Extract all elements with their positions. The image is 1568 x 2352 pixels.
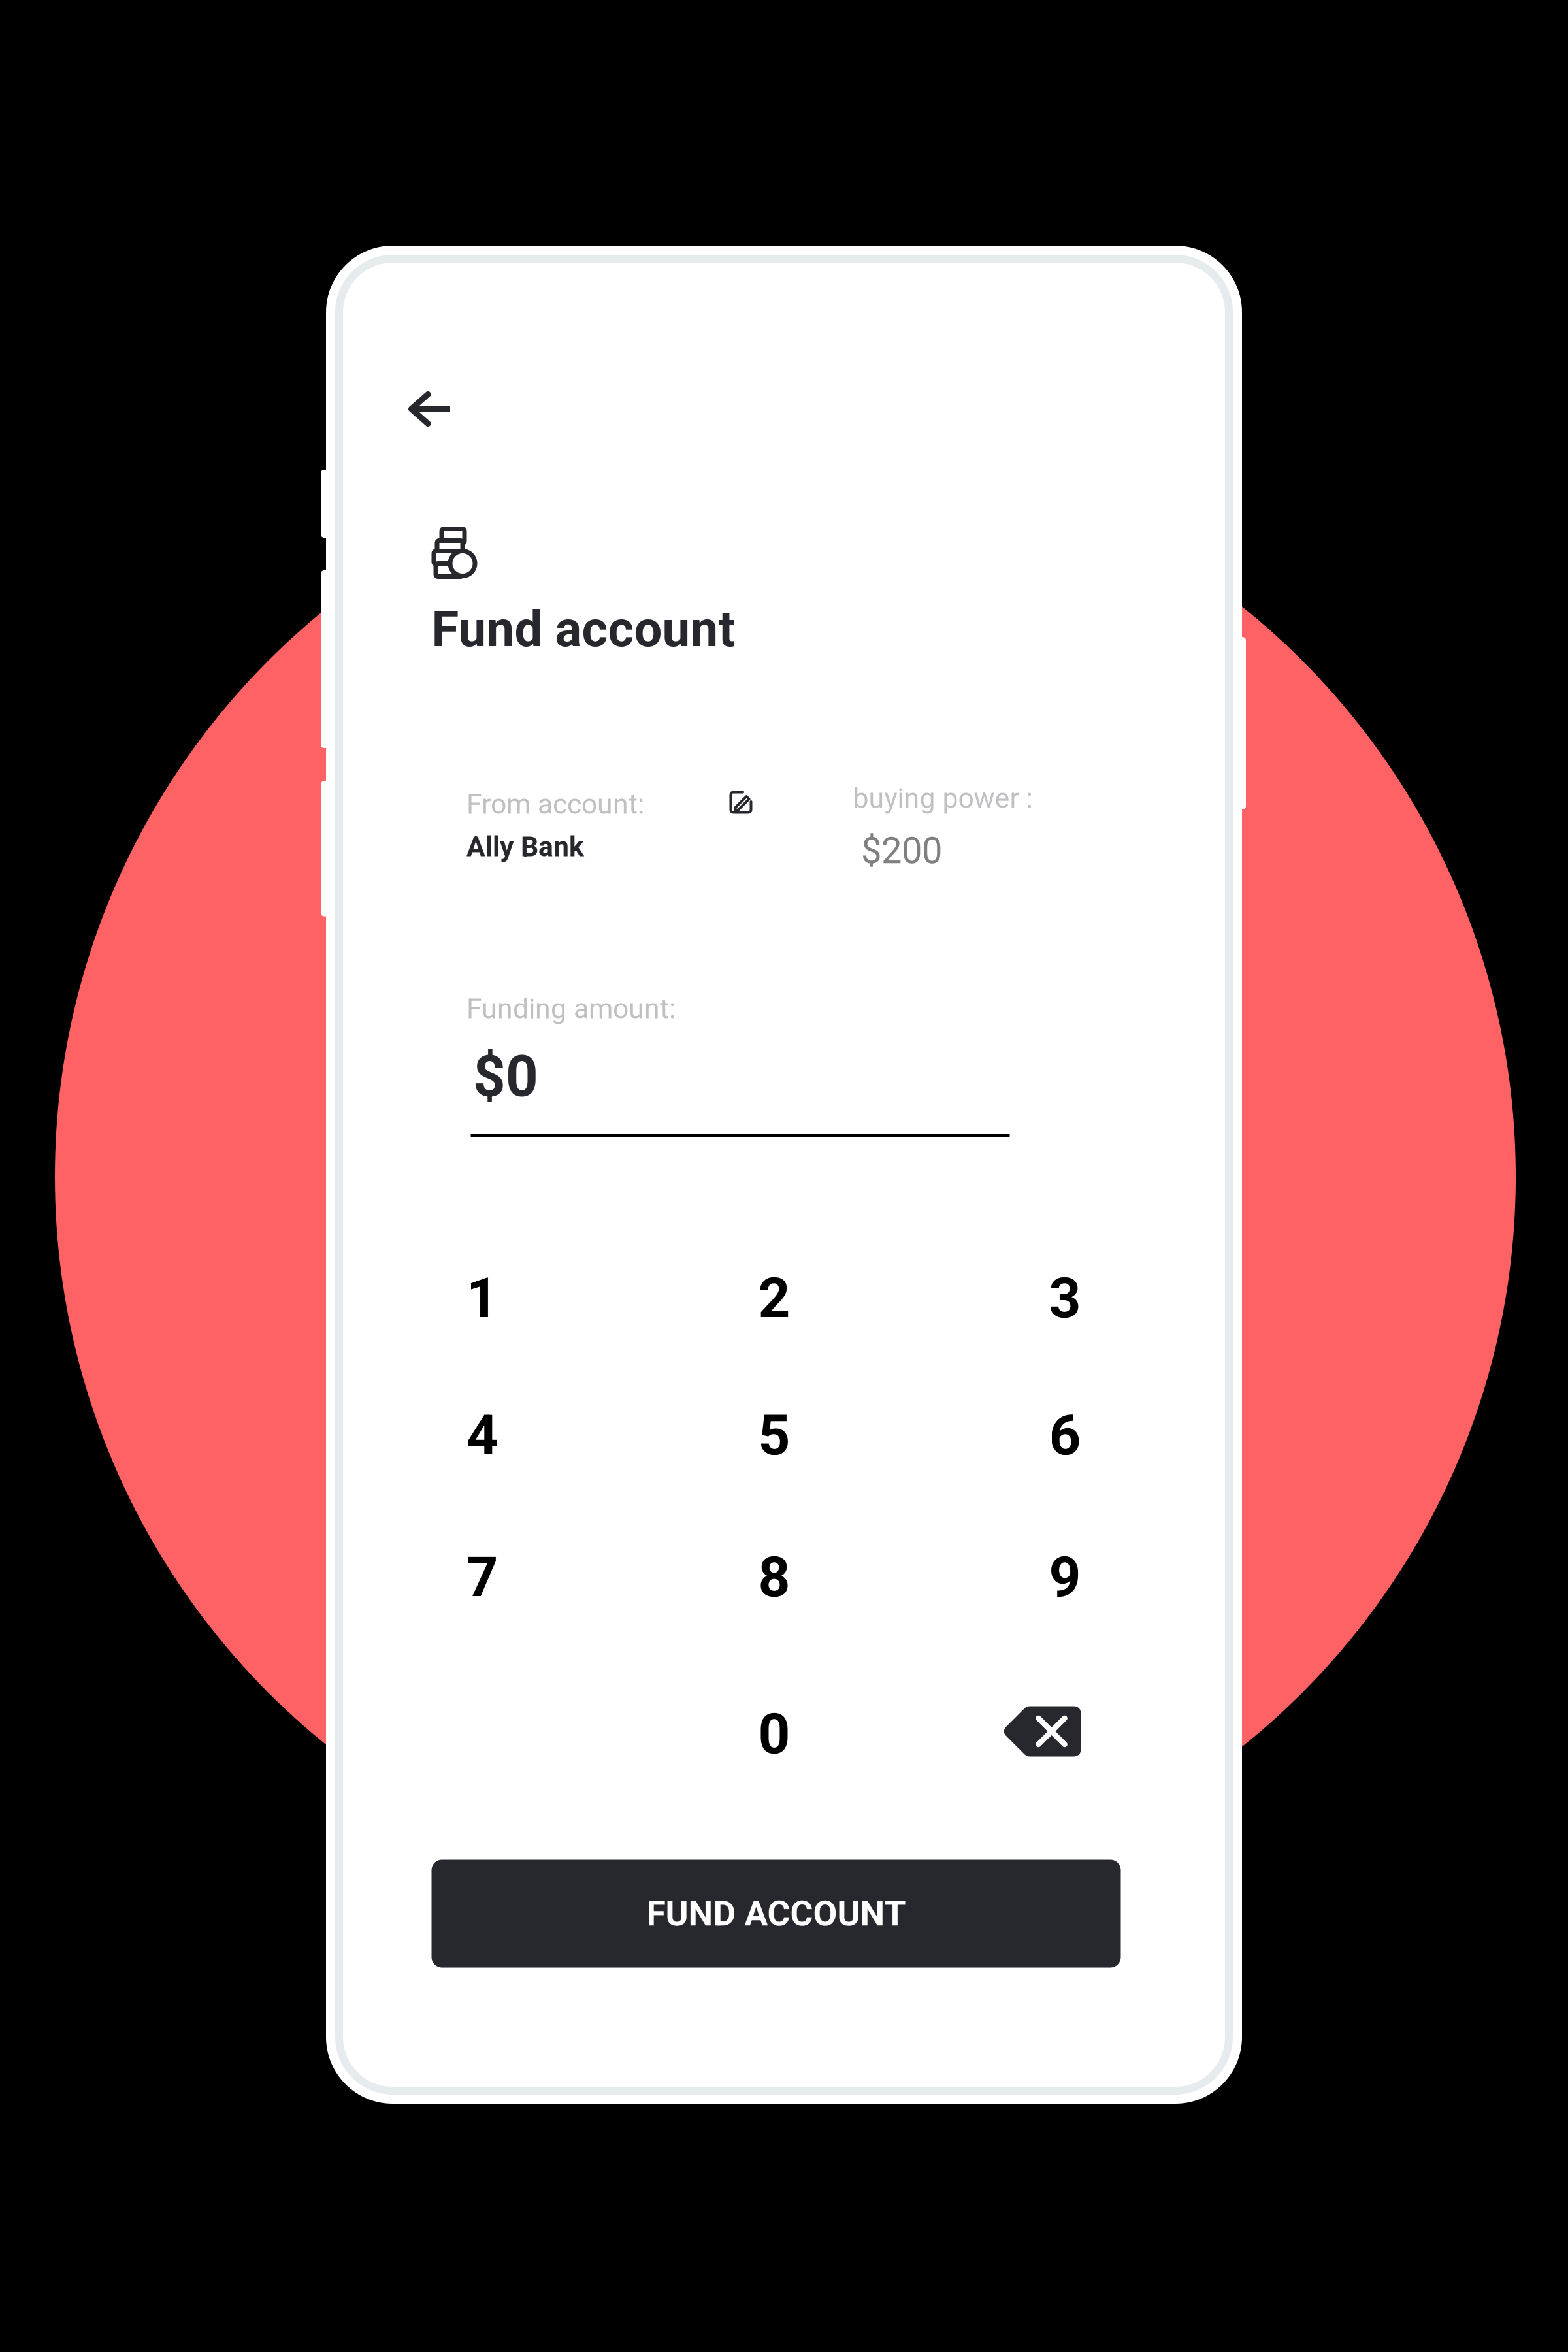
staticText: Fund account [432, 600, 735, 658]
staticText: 1 [466, 1266, 498, 1331]
staticText: buying power : [853, 782, 1033, 815]
staticText: 6 [1049, 1403, 1081, 1468]
staticText: Funding amount: [466, 992, 676, 1025]
staticText: 3 [1049, 1266, 1081, 1331]
button[interactable]: 5 [630, 1370, 918, 1501]
staticText: FUND ACCOUNT [646, 1893, 906, 1934]
button[interactable]: Edit account [716, 777, 766, 827]
staticText: 7 [466, 1544, 498, 1610]
button[interactable]: 6 [921, 1370, 1209, 1501]
button[interactable]: Delete [911, 1666, 1173, 1797]
staticText: $0 [473, 1044, 538, 1110]
button[interactable]: 9 [921, 1512, 1209, 1642]
button[interactable]: 4 [338, 1370, 626, 1501]
staticText: From account: [466, 788, 644, 821]
staticText: $200 [861, 829, 942, 872]
button[interactable]: Back [394, 377, 465, 441]
button[interactable]: 1 [338, 1233, 626, 1364]
staticText: 5 [758, 1403, 790, 1468]
button[interactable]: 0 [630, 1669, 918, 1799]
button[interactable]: 3 [921, 1233, 1209, 1364]
button[interactable]: 7 [338, 1512, 626, 1642]
staticText: 2 [758, 1266, 790, 1331]
staticText: 9 [1049, 1544, 1081, 1610]
staticText: Ally Bank [466, 830, 584, 863]
button[interactable]: 8 [630, 1512, 918, 1642]
staticText: 0 [758, 1701, 790, 1767]
staticText: 8 [758, 1544, 790, 1610]
button[interactable]: 2 [630, 1233, 918, 1364]
staticText: 4 [466, 1403, 498, 1468]
button[interactable]: FUND ACCOUNT [432, 1860, 1121, 1968]
